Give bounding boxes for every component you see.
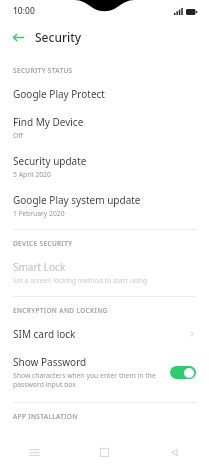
staticText: APP INSTALLATION xyxy=(13,412,78,421)
staticText: Smart Lock xyxy=(13,260,66,274)
staticText: DEVICE SECURITY xyxy=(13,239,73,248)
staticText: SECURITY STATUS xyxy=(13,66,73,75)
staticText: Find My Device xyxy=(13,115,84,129)
button[interactable]: Google Play Protect xyxy=(0,80,209,108)
staticText: Security xyxy=(35,29,82,45)
staticText: SIM card lock xyxy=(13,327,76,341)
staticText: Google Play Protect xyxy=(13,87,105,101)
button[interactable]: Find My Device xyxy=(0,108,209,147)
button[interactable]: Show Password xyxy=(0,348,209,396)
staticText: Security update xyxy=(13,154,87,168)
staticText: 1 February 2020 xyxy=(13,209,65,218)
staticText: Show Password xyxy=(13,355,87,369)
button[interactable]: Recents xyxy=(0,439,69,465)
button[interactable]: Home xyxy=(69,439,139,465)
button[interactable]: Show Password toggle xyxy=(170,366,196,379)
button[interactable]: SIM card lock xyxy=(0,320,209,348)
button[interactable]: Smart Lock xyxy=(0,253,209,292)
button[interactable]: Google Play system update xyxy=(0,186,209,225)
button[interactable]: Back xyxy=(8,27,28,47)
button[interactable]: Back xyxy=(139,439,209,465)
staticText: 5 April 2020 xyxy=(13,170,51,179)
button[interactable]: Security update xyxy=(0,147,209,186)
staticText: Set a screen locking method to start usi… xyxy=(13,276,148,285)
staticText: ENCRYPTION AND LOCKING xyxy=(13,306,108,315)
staticText: Google Play system update xyxy=(13,193,141,207)
staticText: Show characters when you enter them in t… xyxy=(13,371,156,389)
staticText: 10:00 xyxy=(13,5,35,17)
staticText: Off xyxy=(13,131,23,140)
